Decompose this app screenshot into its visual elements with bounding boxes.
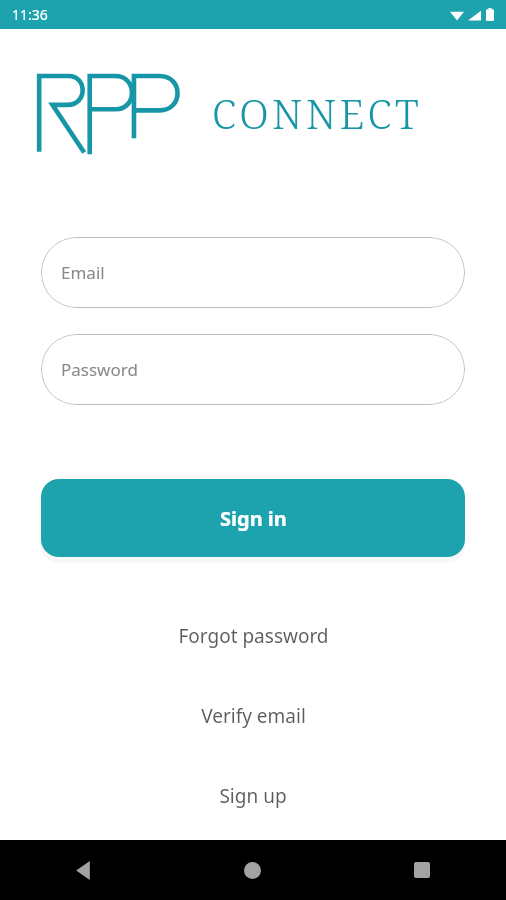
button[interactable]: Sign up	[0, 779, 506, 813]
staticText: Email	[61, 261, 105, 284]
button[interactable]: Sign in	[41, 479, 465, 557]
button[interactable]: Verify email	[0, 699, 506, 733]
button[interactable]: Back	[0, 840, 168, 900]
staticText: Password	[61, 358, 138, 381]
staticText: Sign up	[219, 783, 287, 809]
button[interactable]: Password	[41, 334, 465, 405]
button[interactable]: Home	[168, 840, 337, 900]
staticText: CONNECT	[212, 85, 423, 141]
staticText: Sign in	[220, 505, 287, 532]
staticText: Forgot password	[178, 623, 329, 649]
button[interactable]: Forgot password	[0, 619, 506, 653]
staticText: Verify email	[201, 703, 306, 729]
staticText: 11:36	[12, 5, 48, 24]
button[interactable]: Recent apps	[337, 840, 506, 900]
button[interactable]: Email	[41, 237, 465, 308]
